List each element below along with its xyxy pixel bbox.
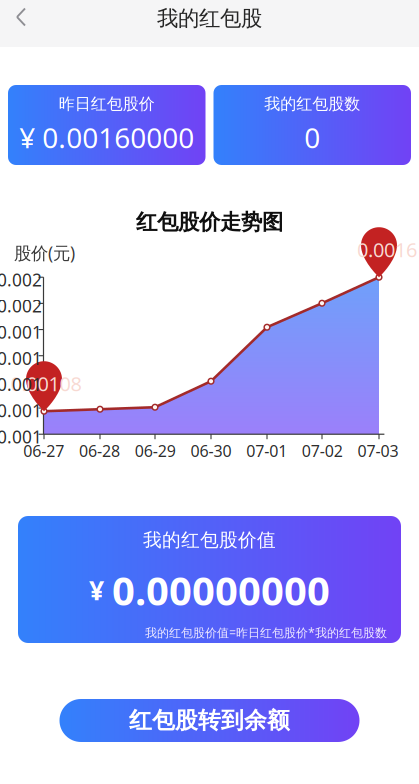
button[interactable]: 红包股转到余额 (59, 699, 359, 742)
staticText: 0 (304, 119, 320, 156)
staticText: 0.001 (0, 399, 42, 422)
staticText: 0.001 (0, 425, 42, 448)
staticText: 我的红包股 (157, 5, 262, 32)
staticText: 0.00000000 (112, 563, 330, 616)
staticText: 07-02 (302, 440, 343, 461)
staticText: 0.002 (0, 294, 42, 317)
staticText: 06-30 (190, 440, 231, 461)
staticText: 我的红包股数 (264, 94, 360, 114)
staticText: 07-01 (246, 440, 287, 461)
staticText: ¥ (89, 572, 104, 608)
staticText: 0.001 (0, 347, 42, 370)
staticText: 06-29 (135, 440, 176, 461)
staticText: 07-03 (358, 440, 399, 461)
staticText: 股价(元) (14, 241, 75, 264)
staticText: 0.0016 (357, 236, 417, 263)
staticText: 0.001 (0, 321, 42, 344)
staticText: 06-27 (23, 440, 64, 461)
staticText: 我的红包股价值 (143, 528, 276, 551)
staticText: 0.00108 (10, 370, 81, 397)
staticText: 昨日红包股价 (59, 94, 155, 114)
staticText: 0.001 (0, 373, 42, 396)
staticText: 红包股价走势图 (136, 209, 283, 235)
staticText: ¥ 0.00160000 (19, 119, 194, 156)
staticText: 红包股转到余额 (129, 707, 290, 734)
staticText: 06-28 (79, 440, 120, 461)
button[interactable]: Back (0, 0, 42, 46)
staticText: 我的红包股价值=昨日红包股价*我的红包股数 (145, 625, 387, 640)
staticText: 0.002 (0, 268, 42, 291)
